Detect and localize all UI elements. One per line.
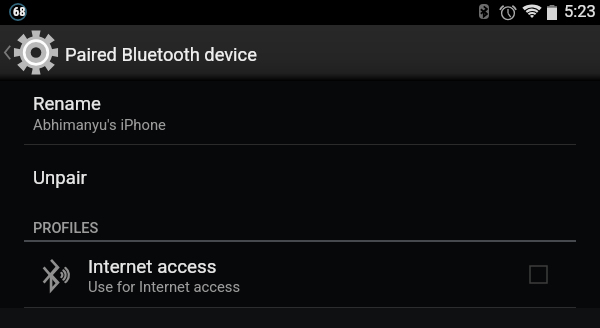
staticText: PROFILES [33, 220, 99, 237]
staticText: Paired Bluetooth device [65, 44, 257, 65]
button[interactable] [0, 144, 600, 204]
staticText: Use for Internet access [88, 278, 241, 295]
staticText: 5:23 [564, 2, 596, 21]
button[interactable]: Navigate up [0, 25, 60, 81]
button[interactable]: Internet access checkbox [530, 266, 547, 283]
staticText: Unpair [33, 167, 87, 189]
staticText: Rename [33, 93, 101, 115]
staticText: Abhimanyu's iPhone [33, 116, 166, 133]
button[interactable] [0, 81, 600, 144]
button[interactable] [0, 242, 600, 307]
staticText: 68 [13, 4, 26, 19]
staticText: Internet access [88, 256, 217, 278]
